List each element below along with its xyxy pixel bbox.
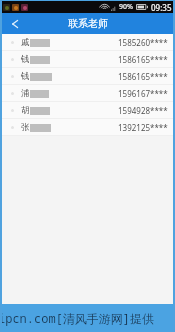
staticText: 1392125****	[118, 122, 168, 133]
staticText: 胡	[21, 105, 30, 116]
staticText: 张	[21, 122, 30, 133]
button[interactable]: 钱	[0, 51, 175, 68]
staticText: 1586165****	[118, 54, 168, 65]
staticText: 钱	[21, 54, 30, 65]
button[interactable]: 浦	[0, 85, 175, 102]
staticText: 1586165****	[118, 71, 168, 82]
staticText: 1594928****	[118, 105, 168, 116]
staticText: 1585260****	[118, 37, 168, 48]
button[interactable]: 张	[0, 119, 175, 136]
staticText: 联系老师	[68, 17, 108, 30]
staticText: 90%	[119, 2, 133, 12]
staticText: 钱	[21, 71, 30, 82]
staticText: 09:35	[151, 2, 172, 13]
staticText: ipcn.com[清风手游网]提供	[0, 310, 155, 326]
button[interactable]: 钱	[0, 68, 175, 85]
staticText: 浦	[21, 88, 30, 99]
button[interactable]: 胡	[0, 102, 175, 119]
staticText: 1596167****	[118, 88, 168, 99]
staticText: 戚	[21, 37, 30, 48]
button[interactable]: Back	[0, 13, 29, 34]
button[interactable]: 戚	[0, 34, 175, 51]
